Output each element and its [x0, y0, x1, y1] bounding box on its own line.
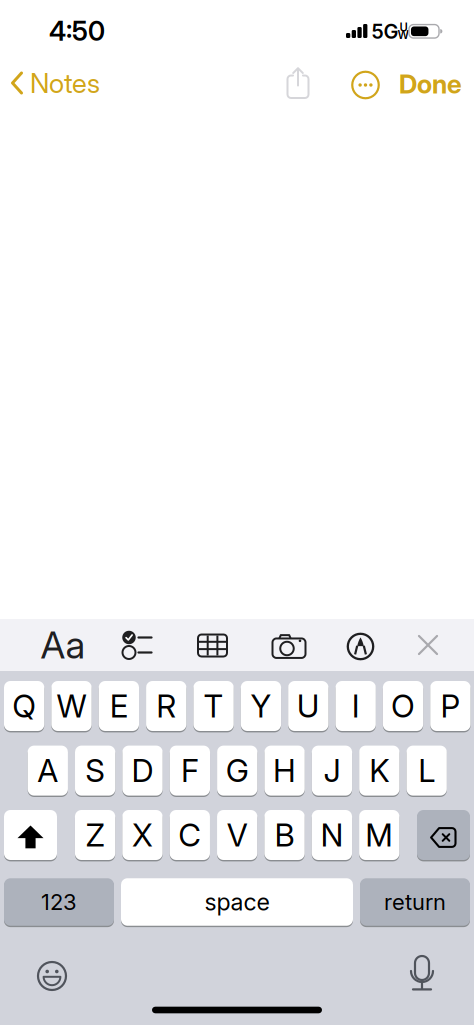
staticText: Y	[250, 687, 271, 725]
button[interactable]: Delete	[417, 809, 470, 861]
staticText: H	[273, 752, 296, 789]
staticText: U	[399, 21, 407, 34]
button[interactable]: J	[312, 745, 352, 797]
staticText: Aa	[40, 622, 85, 668]
button[interactable]: K	[359, 745, 399, 797]
staticText: U	[297, 687, 320, 725]
staticText: B	[274, 816, 294, 854]
button[interactable]: F	[170, 745, 210, 797]
staticText: T	[204, 687, 224, 725]
button[interactable]: Checklist	[121, 630, 152, 660]
staticText: Z	[86, 816, 105, 854]
button[interactable]: Z	[75, 809, 115, 861]
button[interactable]: Shift	[4, 809, 57, 861]
button[interactable]: B	[264, 809, 305, 861]
button[interactable]: A	[28, 745, 68, 797]
staticText: C	[178, 816, 201, 854]
staticText: W	[397, 28, 409, 42]
button[interactable]: E	[99, 680, 139, 732]
staticText: O	[391, 687, 415, 725]
staticText: J	[323, 752, 340, 789]
staticText: M	[365, 816, 393, 854]
staticText: X	[132, 816, 153, 854]
button[interactable]: I	[335, 680, 376, 732]
staticText: 5G	[371, 19, 398, 44]
button[interactable]: D	[122, 745, 163, 797]
button[interactable]: Share	[285, 67, 311, 99]
staticText: Q	[12, 687, 36, 725]
staticText: P	[440, 687, 460, 725]
button[interactable]: Y	[241, 680, 281, 732]
staticText: space	[204, 888, 269, 916]
button[interactable]: M	[359, 809, 399, 861]
staticText: G	[226, 752, 249, 789]
button[interactable]: U	[288, 680, 328, 732]
staticText: Done	[399, 68, 462, 100]
button[interactable]: Camera	[272, 634, 305, 658]
button[interactable]: space	[121, 877, 353, 927]
button[interactable]: N	[312, 809, 352, 861]
staticText: 4:50	[49, 15, 105, 47]
staticText: W	[56, 687, 86, 725]
staticText: D	[131, 752, 153, 789]
button[interactable]: C	[170, 809, 210, 861]
button[interactable]: H	[264, 745, 305, 797]
button[interactable]: Table	[198, 634, 227, 656]
button[interactable]: Done	[399, 68, 462, 100]
staticText: 123	[41, 889, 77, 915]
button[interactable]: return	[360, 877, 470, 927]
staticText: L	[418, 752, 435, 789]
button[interactable]: T	[193, 680, 234, 732]
button[interactable]: Format	[40, 622, 85, 668]
staticText: I	[352, 687, 360, 725]
button[interactable]: R	[146, 680, 186, 732]
button[interactable]: L	[406, 745, 447, 797]
button[interactable]: Dismiss keyboard	[418, 635, 438, 655]
button[interactable]: W	[51, 680, 92, 732]
staticText: A	[37, 752, 58, 789]
button[interactable]: G	[217, 745, 257, 797]
button[interactable]: Notes	[11, 66, 100, 100]
button[interactable]: Emoji	[37, 961, 67, 991]
staticText: K	[369, 752, 389, 789]
button[interactable]: More	[352, 71, 379, 98]
button[interactable]: O	[383, 680, 423, 732]
staticText: N	[320, 816, 343, 854]
button[interactable]: P	[430, 680, 470, 732]
button[interactable]: Q	[4, 680, 44, 732]
staticText: return	[384, 889, 446, 915]
button[interactable]: S	[75, 745, 115, 797]
button[interactable]: X	[122, 809, 163, 861]
button[interactable]: 123	[4, 877, 114, 927]
button[interactable]: Dictate	[411, 956, 433, 992]
staticText: S	[85, 752, 105, 789]
staticText: V	[227, 816, 248, 854]
staticText: E	[110, 687, 128, 725]
staticText: R	[156, 687, 176, 725]
button[interactable]: V	[217, 809, 257, 861]
staticText: F	[181, 752, 199, 789]
button[interactable]: Markup	[348, 634, 373, 659]
staticText: Notes	[30, 66, 100, 100]
